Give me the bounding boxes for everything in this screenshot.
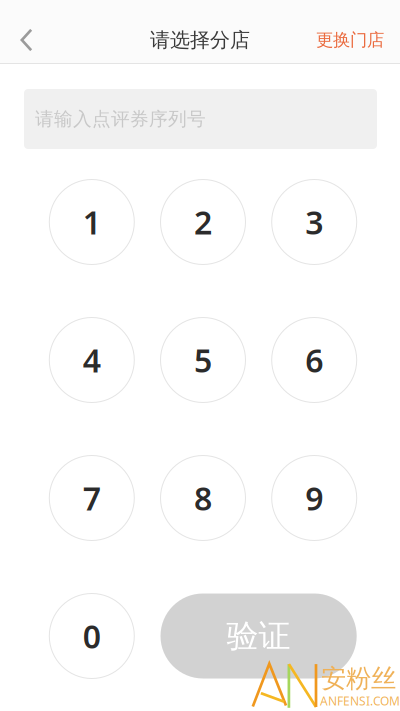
staticText: 4 bbox=[83, 339, 101, 381]
staticText: 验证 bbox=[227, 616, 291, 656]
button[interactable]: 8 bbox=[160, 455, 245, 540]
staticText: 更换门店 bbox=[316, 29, 384, 51]
staticText: ANFENSI.COM bbox=[320, 693, 400, 709]
staticText: 7 bbox=[83, 477, 101, 519]
staticText: 3 bbox=[305, 201, 323, 243]
staticText: 请选择分店 bbox=[150, 28, 250, 52]
staticText: 2 bbox=[194, 201, 212, 243]
button[interactable]: 7 bbox=[49, 455, 134, 540]
button[interactable]: 更换门店 bbox=[300, 18, 400, 62]
button[interactable]: 9 bbox=[272, 455, 357, 540]
button[interactable]: 2 bbox=[160, 179, 245, 264]
staticText: 5 bbox=[194, 339, 212, 381]
button[interactable]: 6 bbox=[272, 317, 357, 402]
staticText: 9 bbox=[305, 477, 323, 519]
staticText: 0 bbox=[83, 615, 101, 657]
staticText: 请输入点评券序列号 bbox=[35, 107, 206, 130]
button[interactable]: 5 bbox=[160, 317, 245, 402]
staticText: 1 bbox=[83, 201, 101, 243]
staticText: 8 bbox=[194, 477, 212, 519]
button[interactable]: 0 bbox=[49, 593, 134, 678]
staticText: 安粉丝 bbox=[321, 663, 396, 694]
button[interactable]: 1 bbox=[49, 179, 134, 264]
button[interactable]: 验证 bbox=[160, 593, 357, 678]
button[interactable]: Back bbox=[4, 18, 48, 62]
button[interactable]: 3 bbox=[272, 179, 357, 264]
button[interactable]: 4 bbox=[49, 317, 134, 402]
staticText: 6 bbox=[305, 339, 323, 381]
